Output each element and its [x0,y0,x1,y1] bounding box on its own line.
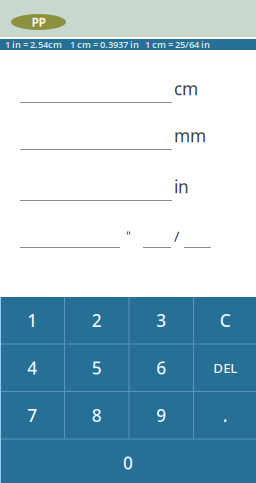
button[interactable]: 2 [65,297,128,343]
staticText: 1 [27,309,37,332]
button[interactable]: 7 [0,392,64,438]
staticText: 1 cm = 25/64 in [145,38,210,51]
button[interactable] [20,228,120,248]
staticText: 5 [92,356,102,379]
button[interactable]: C [194,297,256,343]
button[interactable] [143,228,171,248]
button[interactable] [184,228,211,248]
staticText: 6 [156,356,166,379]
button[interactable]: 1 [0,297,64,343]
button[interactable] [20,130,172,150]
button[interactable]: 5 [65,344,128,391]
button[interactable]: 8 [65,392,128,438]
staticText: " [126,228,131,244]
button[interactable]: . [194,392,256,438]
staticText: mm [174,124,206,147]
button[interactable]: PP [11,14,66,30]
button[interactable] [20,83,172,103]
staticText: 0 [123,451,133,474]
button[interactable]: DEL [194,344,256,391]
staticText: cm [174,77,198,100]
staticText: in [174,175,189,198]
staticText: 9 [156,404,166,427]
staticText: 8 [92,404,102,427]
staticText: DEL [213,359,237,377]
staticText: 1 in = 2.54cm [5,38,62,51]
staticText: 7 [27,404,37,427]
staticText: 4 [27,356,37,379]
staticText: C [220,309,231,332]
button[interactable]: 6 [129,344,193,391]
staticText: PP [31,14,45,30]
button[interactable]: 3 [129,297,193,343]
staticText: . [223,404,228,427]
button[interactable]: 0 [0,439,256,483]
staticText: 3 [156,309,166,332]
button[interactable]: 4 [0,344,64,391]
staticText: / [174,226,179,246]
staticText: 1 cm = 0.3937 in [70,38,139,51]
button[interactable]: 9 [129,392,193,438]
staticText: 2 [92,309,102,332]
button[interactable] [20,181,172,201]
